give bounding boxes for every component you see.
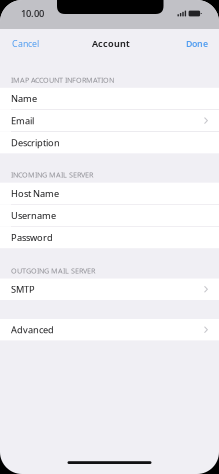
- staticText: OUTGOING MAIL SERVER: [11, 266, 95, 275]
- button[interactable]: Password: [0, 227, 219, 248]
- button[interactable]: Username: [0, 205, 219, 226]
- button[interactable]: Description: [0, 132, 219, 153]
- button[interactable]: SMTP: [0, 278, 219, 300]
- button[interactable]: Cancel: [0, 32, 39, 54]
- staticText: Advanced: [11, 323, 54, 336]
- staticText: Cancel: [12, 37, 39, 49]
- button[interactable]: Host Name: [0, 183, 219, 204]
- staticText: Description: [11, 136, 60, 149]
- staticText: Password: [11, 231, 53, 244]
- staticText: INCOMING MAIL SERVER: [11, 170, 93, 180]
- staticText: Name: [11, 92, 37, 105]
- staticText: Host Name: [11, 187, 59, 200]
- button[interactable]: Done: [186, 32, 219, 54]
- staticText: Username: [11, 209, 56, 222]
- staticText: Account: [92, 37, 130, 50]
- staticText: SMTP: [11, 283, 35, 295]
- button[interactable]: Email: [0, 110, 219, 131]
- staticText: Email: [11, 114, 34, 127]
- staticText: Done: [186, 37, 208, 49]
- staticText: 10.00: [21, 7, 44, 20]
- staticText: IMAP ACCOUNT INFORMATION: [11, 75, 114, 85]
- button[interactable]: Advanced: [0, 319, 219, 340]
- button[interactable]: Name: [0, 88, 219, 109]
